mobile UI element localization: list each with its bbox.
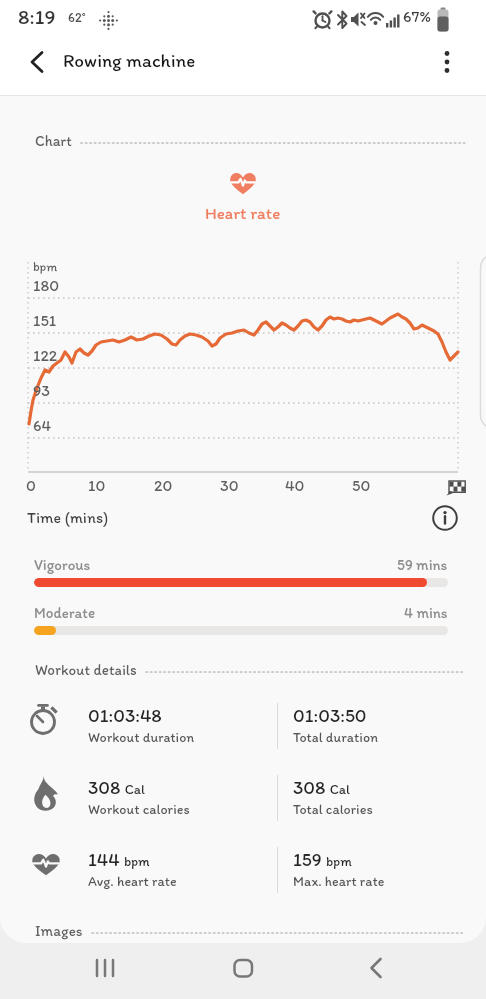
staticText: 144 bpm: [88, 848, 150, 871]
button[interactable]: [81, 944, 129, 992]
staticText: 10: [88, 476, 106, 495]
staticText: Max. heart rate: [293, 873, 385, 890]
staticText: 8:19: [18, 4, 56, 29]
staticText: Moderate: [34, 604, 96, 622]
staticText: 159 bpm: [293, 848, 352, 871]
staticText: 180: [33, 276, 60, 295]
staticText: 93: [33, 381, 51, 400]
staticText: 01:03:48: [88, 704, 162, 727]
staticText: Vigorous: [34, 556, 91, 574]
staticText: Workout duration: [88, 729, 195, 746]
staticText: 122: [33, 346, 58, 365]
staticText: 62°: [68, 10, 86, 26]
staticText: 308 Cal: [293, 776, 351, 799]
button[interactable]: [0, 256, 486, 506]
staticText: 50: [352, 476, 371, 495]
button[interactable]: [424, 37, 470, 87]
staticText: Rowing machine: [63, 49, 196, 72]
staticText: Workout calories: [88, 801, 190, 818]
staticText: Avg. heart rate: [88, 873, 177, 890]
staticText: Total calories: [293, 801, 373, 818]
staticText: 308 Cal: [88, 776, 146, 799]
staticText: 4 mins: [404, 604, 448, 622]
staticText: 67%: [403, 7, 431, 26]
button[interactable]: [353, 944, 401, 992]
staticText: Images: [35, 922, 83, 940]
staticText: Workout details: [35, 661, 137, 679]
staticText: 151: [33, 311, 57, 330]
staticText: Heart rate: [205, 203, 281, 223]
staticText: 30: [220, 476, 239, 495]
button[interactable]: [18, 42, 58, 82]
staticText: 40: [285, 476, 305, 495]
staticText: Time (mins): [27, 508, 109, 527]
button[interactable]: [219, 944, 267, 992]
staticText: 59 mins: [397, 556, 448, 574]
staticText: Chart: [35, 132, 72, 150]
staticText: 20: [154, 476, 173, 495]
button[interactable]: [431, 504, 459, 532]
staticText: 01:03:50: [293, 704, 367, 727]
staticText: Total duration: [293, 729, 378, 746]
staticText: 64: [33, 416, 52, 435]
staticText: bpm: [33, 259, 58, 275]
staticText: 0: [26, 476, 36, 495]
